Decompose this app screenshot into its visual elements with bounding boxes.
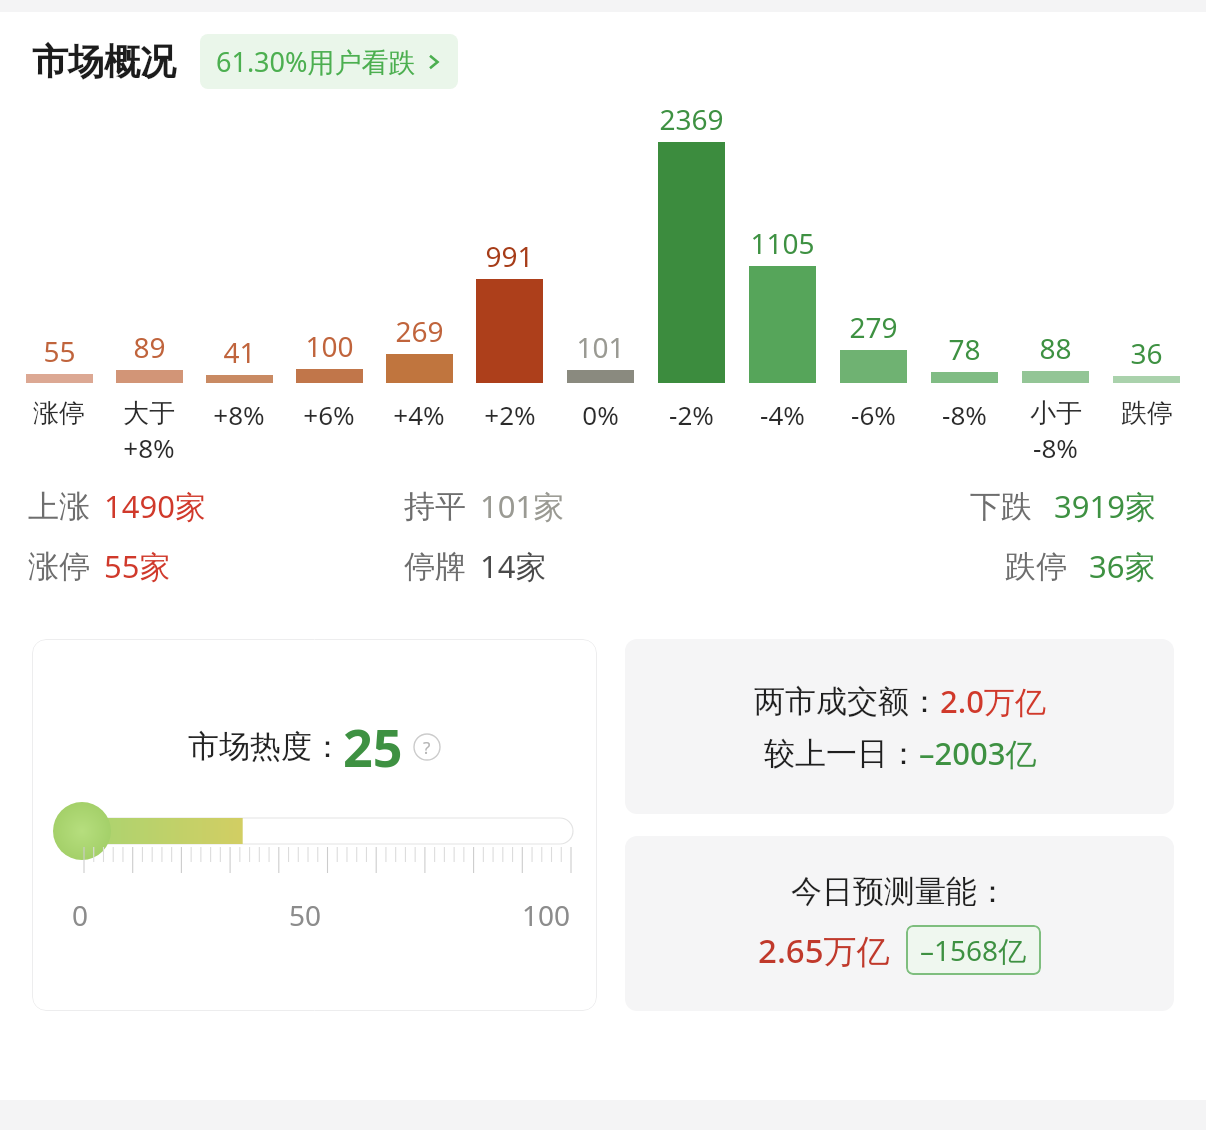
staticText: 下跌 (970, 487, 1032, 526)
staticText: -8% (942, 397, 987, 432)
staticText: 3919家 (1054, 485, 1156, 527)
staticText: 2.0万亿 (940, 680, 1046, 722)
button[interactable]: 61.30%用户看跌 (200, 34, 458, 89)
staticText: –1568亿 (920, 931, 1027, 969)
staticText: 50 (289, 896, 322, 934)
staticText: 89 (133, 328, 166, 366)
staticText: 1490家 (104, 485, 206, 527)
button[interactable]: 帮助说明 (413, 733, 441, 761)
staticText: 78 (948, 330, 981, 368)
staticText: 55家 (104, 545, 171, 587)
staticText: 269 (395, 312, 444, 350)
staticText: 涨停 (33, 397, 85, 430)
staticText: 279 (849, 308, 898, 346)
staticText: 36 (1130, 334, 1163, 372)
staticText: +8% (213, 397, 265, 432)
staticText: ? (423, 736, 431, 759)
staticText: 2369 (659, 100, 724, 138)
staticText: 36家 (1089, 545, 1156, 587)
staticText: 14家 (480, 545, 547, 587)
staticText: 0% (582, 397, 619, 432)
staticText: –2003亿 (919, 732, 1037, 774)
staticText: 1105 (750, 224, 815, 262)
staticText: +2% (484, 397, 536, 432)
button[interactable]: 今日预测量能： (625, 836, 1174, 1011)
staticText: 61.30%用户看跌 (216, 43, 416, 80)
staticText: 停牌 (404, 547, 466, 586)
staticText: 100 (305, 327, 354, 365)
staticText: 101 (576, 328, 625, 366)
staticText: 较上一日： (764, 734, 919, 773)
staticText: 101家 (480, 485, 565, 527)
staticText: 100 (522, 896, 571, 934)
staticText: 上涨 (28, 487, 90, 526)
staticText: 55 (43, 332, 76, 370)
staticText: 小于 (1030, 397, 1082, 430)
staticText: 市场概况 (32, 39, 176, 84)
staticText: -2% (669, 397, 714, 432)
button[interactable]: 两市成交额： (625, 639, 1174, 814)
staticText: 跌停 (1005, 547, 1067, 586)
button[interactable]: 市场热度： (32, 639, 597, 1011)
staticText: 2.65万亿 (758, 928, 890, 973)
staticText: -8% (1033, 430, 1078, 465)
staticText: +6% (303, 397, 355, 432)
staticText: 41 (223, 333, 256, 371)
staticText: 88 (1039, 329, 1072, 367)
staticText: 991 (485, 237, 534, 275)
staticText: -6% (851, 397, 896, 432)
staticText: +8% (123, 430, 175, 465)
staticText: 市场热度： (188, 727, 343, 766)
staticText: 今日预测量能： (791, 872, 1008, 911)
staticText: +4% (393, 397, 445, 432)
staticText: 大于 (123, 397, 175, 430)
staticText: 25 (343, 711, 403, 782)
staticText: -4% (760, 397, 805, 432)
staticText: 涨停 (28, 547, 90, 586)
button[interactable]: –1568亿 (906, 925, 1041, 975)
staticText: 两市成交额： (754, 682, 940, 721)
staticText: 持平 (404, 487, 466, 526)
staticText: 0 (72, 896, 89, 934)
staticText: 跌停 (1121, 397, 1173, 430)
